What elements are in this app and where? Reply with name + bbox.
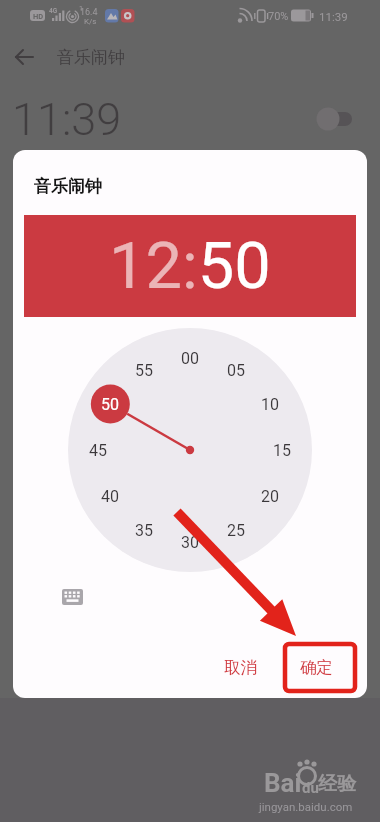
staticText: 15: [273, 441, 291, 460]
staticText: jingyan.baidu.com: [259, 800, 353, 813]
button[interactable]: [8, 44, 42, 70]
staticText: 00: [181, 349, 199, 368]
staticText: Bai: [264, 768, 302, 798]
staticText: 10: [261, 395, 279, 414]
staticText: 11:39: [12, 93, 122, 146]
button[interactable]: 取消: [205, 647, 275, 687]
staticText: 25: [227, 521, 245, 540]
button[interactable]: 确定: [281, 647, 351, 687]
staticText: 11:39: [319, 10, 348, 23]
staticText: du: [302, 779, 319, 797]
staticText: 35: [135, 521, 153, 540]
button[interactable]: [314, 105, 356, 133]
staticText: 音乐闹钟: [57, 47, 125, 68]
staticText: 16.4: [80, 7, 98, 18]
button[interactable]: [56, 584, 88, 610]
staticText: 取消: [224, 657, 257, 678]
staticText: 4G: [49, 7, 58, 15]
staticText: 经验: [318, 772, 356, 796]
staticText: 05: [227, 361, 245, 380]
staticText: 45: [89, 441, 107, 460]
staticText: 确定: [300, 657, 333, 678]
staticText: 1: [79, 5, 83, 13]
staticText: 40: [101, 487, 119, 506]
staticText: 30: [181, 533, 199, 552]
staticText: 20: [261, 487, 279, 506]
staticText: 12:50: [109, 228, 271, 304]
staticText: K/s: [84, 17, 97, 26]
staticText: 55: [135, 361, 153, 380]
staticText: 音乐闹钟: [34, 176, 102, 197]
staticText: 70%: [268, 10, 289, 23]
staticText: HD: [33, 12, 44, 21]
staticText: 50: [101, 395, 119, 414]
